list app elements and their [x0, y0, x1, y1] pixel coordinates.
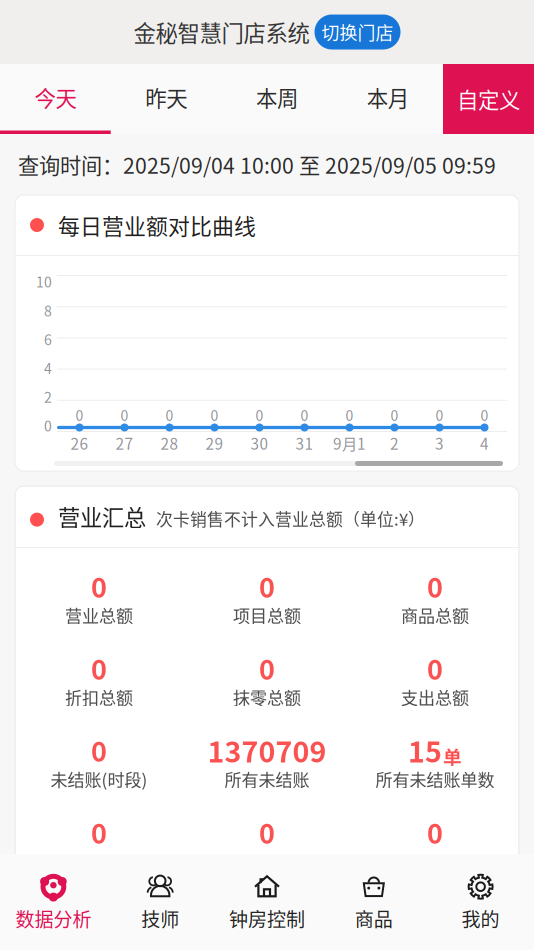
staticText: 26	[70, 432, 88, 454]
staticText: 0	[435, 405, 443, 425]
staticText: 0	[259, 812, 275, 851]
staticText: 0	[300, 405, 308, 425]
button[interactable]: 本月	[332, 64, 443, 134]
staticText: 我的	[462, 905, 500, 932]
staticText: 0	[390, 405, 398, 425]
staticText: 0	[75, 405, 83, 425]
staticText: 0	[427, 566, 443, 605]
staticText: 0	[91, 812, 107, 851]
button[interactable]: 昨天	[111, 64, 222, 134]
staticText: 0	[91, 648, 107, 687]
staticText: 商品	[355, 905, 393, 932]
button[interactable]: 本周	[221, 64, 332, 134]
staticText: 支出总额	[401, 685, 469, 709]
staticText: 0	[165, 405, 173, 425]
staticText: 4	[480, 432, 489, 454]
staticText: 钟房控制	[229, 905, 305, 932]
staticText: 0	[480, 405, 488, 425]
staticText: 31	[295, 432, 313, 454]
staticText: 0	[345, 405, 353, 425]
staticText: 28	[160, 432, 178, 454]
staticText: 今天	[34, 82, 76, 113]
staticText: 27	[115, 432, 133, 454]
button[interactable]: 技师	[107, 854, 214, 950]
staticText: 0	[120, 405, 128, 425]
staticText: 3	[435, 432, 444, 454]
staticText: 0	[210, 405, 218, 425]
staticText: 8	[44, 300, 52, 320]
staticText: 抹零总额	[233, 685, 301, 709]
staticText: 0	[255, 405, 263, 425]
staticText: 技师	[141, 905, 179, 932]
staticText: 商品总额	[401, 603, 469, 627]
staticText: 次卡销售不计入营业总额（单位:¥）	[156, 506, 425, 531]
staticText: 0	[44, 415, 52, 436]
staticText: 2	[44, 387, 52, 407]
staticText: 本月	[367, 82, 409, 113]
staticText: 1370709	[207, 729, 326, 771]
staticText: 项目总额	[233, 603, 301, 627]
staticText: 单	[443, 743, 462, 770]
staticText: 所有未结账	[224, 767, 309, 791]
staticText: 金秘智慧门店系统	[133, 16, 309, 48]
staticText: 0	[91, 566, 107, 605]
staticText: 所有未结账单数	[375, 767, 494, 791]
staticText: 10	[36, 271, 52, 292]
staticText: 本周	[256, 82, 298, 113]
staticText: 切换门店	[321, 19, 393, 45]
staticText: 0	[259, 648, 275, 687]
button[interactable]: 切换门店	[314, 14, 400, 49]
staticText: 数据分析	[15, 905, 91, 932]
staticText: 0	[91, 730, 107, 769]
button[interactable]: 我的	[427, 854, 534, 950]
button[interactable]: 商品	[320, 854, 427, 950]
staticText: 0	[427, 812, 443, 851]
staticText: 9月1	[333, 432, 366, 454]
staticText: 4	[44, 358, 52, 378]
staticText: 6	[44, 329, 52, 349]
staticText: 查询时间：2025/09/04 10:00 至 2025/09/05 09:59	[18, 149, 496, 180]
staticText: 昨天	[145, 82, 187, 113]
button[interactable]: 钟房控制	[214, 854, 320, 950]
staticText: 自定义	[457, 83, 520, 115]
staticText: 营业总额	[65, 603, 133, 627]
button[interactable]: 自定义	[443, 64, 534, 134]
staticText: 折扣总额	[65, 685, 133, 709]
staticText: 未结账(时段)	[50, 767, 147, 791]
button[interactable]: 今天	[0, 64, 111, 134]
staticText: 0	[259, 566, 275, 605]
staticText: 0	[427, 648, 443, 687]
staticText: 2	[390, 432, 399, 454]
staticText: 营业汇总	[58, 500, 146, 533]
staticText: 30	[250, 432, 268, 454]
staticText: 29	[205, 432, 223, 454]
button[interactable]: 数据分析	[0, 854, 107, 950]
staticText: 15	[408, 729, 442, 771]
staticText: 每日营业额对比曲线	[58, 209, 256, 241]
